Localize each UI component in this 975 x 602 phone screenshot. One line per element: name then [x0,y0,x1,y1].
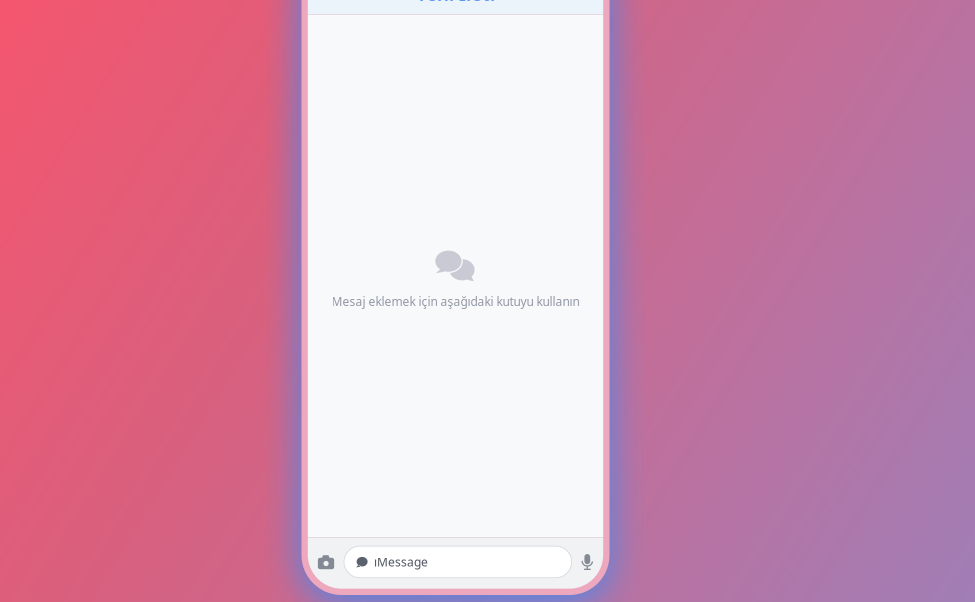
staticText: iMessage [374,554,428,570]
staticText: Yeni İleti [416,0,495,6]
button[interactable]: Camera [310,546,342,578]
button[interactable]: iMessage [344,546,572,578]
button[interactable]: Dictate [571,543,603,575]
staticText: Mesaj eklemek için aşağıdaki kutuyu kull… [331,293,579,309]
button[interactable]: Yeni İleti [416,0,495,14]
